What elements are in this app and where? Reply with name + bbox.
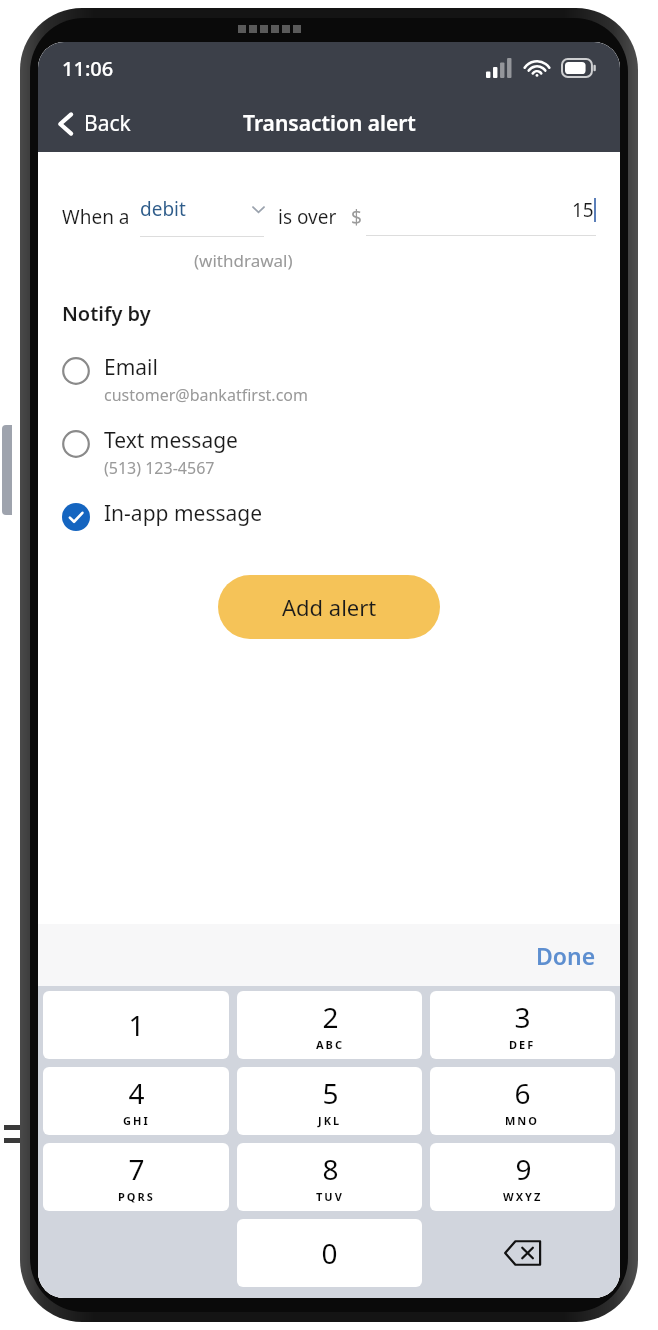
staticText: 15 — [572, 197, 594, 223]
staticText: When a — [62, 204, 130, 230]
staticText: is over — [278, 204, 337, 230]
staticText: GHI — [123, 1113, 150, 1128]
staticText: Email — [104, 353, 158, 382]
staticText: 4 — [128, 1074, 145, 1112]
staticText: Text message — [104, 426, 238, 455]
button[interactable]: Text message — [38, 424, 620, 481]
staticText: Done — [536, 940, 596, 971]
staticText: WXYZ — [503, 1189, 543, 1204]
staticText: JKL — [318, 1113, 342, 1128]
staticText: 6 — [514, 1074, 531, 1112]
staticText: Back — [84, 109, 131, 138]
staticText: Add alert — [282, 592, 377, 622]
staticText: MNO — [505, 1113, 540, 1128]
staticText: 2 — [322, 998, 339, 1036]
button[interactable]: debit — [140, 196, 264, 237]
staticText: ABC — [316, 1037, 344, 1052]
staticText: (513) 123-4567 — [104, 457, 215, 479]
button[interactable]: 8 — [237, 1143, 422, 1211]
button[interactable]: 9 — [430, 1143, 615, 1211]
button[interactable]: 2 — [237, 991, 422, 1059]
button[interactable]: 7 — [43, 1143, 229, 1211]
button[interactable]: 15 — [366, 197, 596, 236]
staticText: 0 — [321, 1234, 338, 1272]
staticText: In-app message — [104, 499, 263, 528]
button[interactable]: Email — [38, 351, 620, 408]
staticText: DEF — [509, 1037, 536, 1052]
button[interactable]: Done — [524, 934, 608, 977]
staticText: 11:06 — [62, 55, 114, 82]
staticText: 3 — [514, 998, 531, 1036]
staticText: 1 — [128, 1006, 145, 1044]
staticText: PQRS — [118, 1189, 155, 1204]
staticText: 8 — [322, 1150, 339, 1188]
button[interactable]: In-app message — [38, 497, 620, 533]
button[interactable]: Backspace — [430, 1219, 615, 1287]
staticText: debit — [140, 196, 186, 222]
staticText: Transaction alert — [243, 109, 416, 138]
staticText: $ — [351, 204, 362, 230]
button[interactable]: 0 — [237, 1219, 422, 1287]
staticText: customer@bankatfirst.com — [104, 384, 308, 406]
staticText: Notify by — [62, 300, 151, 327]
staticText: TUV — [316, 1189, 344, 1204]
staticText: 7 — [128, 1150, 145, 1188]
staticText: 5 — [322, 1074, 339, 1112]
button[interactable]: 5 — [237, 1067, 422, 1135]
button[interactable]: 4 — [43, 1067, 229, 1135]
button[interactable]: 6 — [430, 1067, 615, 1135]
button[interactable]: Back — [48, 103, 141, 144]
staticText: 9 — [515, 1150, 532, 1188]
button[interactable]: Add alert — [218, 575, 440, 639]
button[interactable]: 3 — [430, 991, 615, 1059]
button[interactable]: 1 — [43, 991, 229, 1059]
staticText: (withdrawal) — [194, 249, 293, 272]
